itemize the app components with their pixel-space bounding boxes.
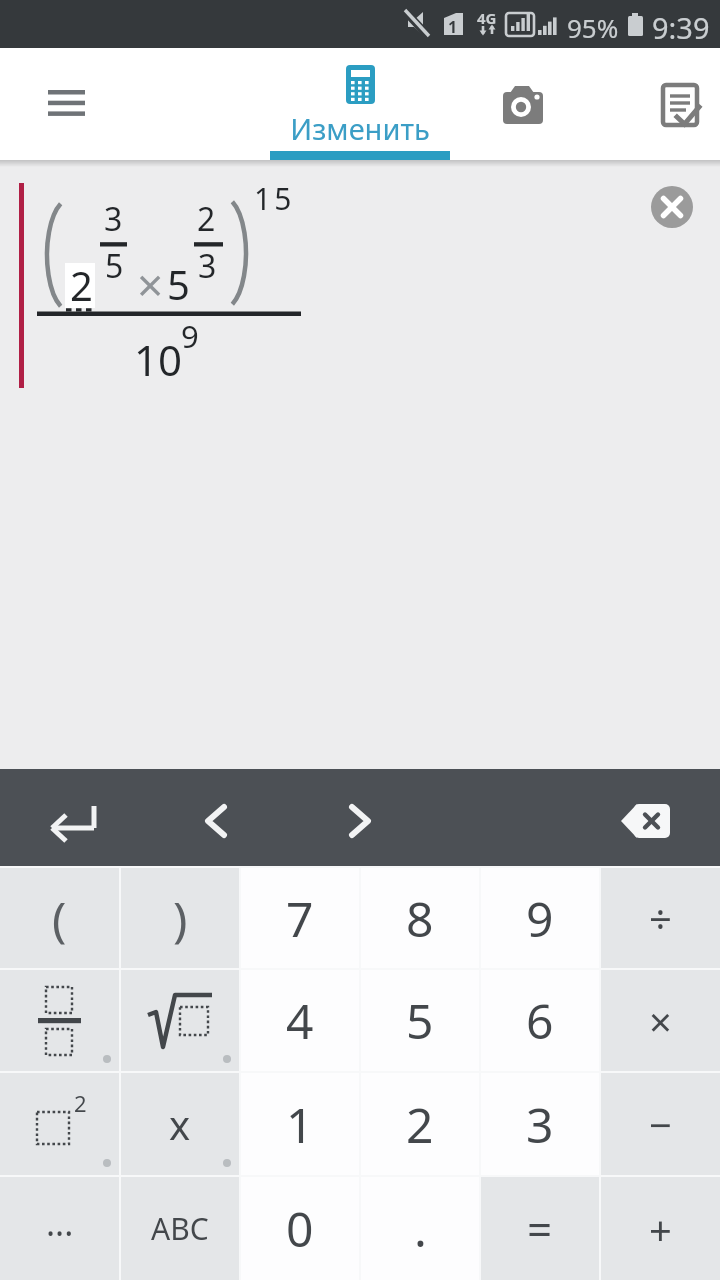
staticText: 6 <box>526 988 554 1053</box>
staticText: x <box>169 1097 191 1151</box>
button[interactable] <box>0 970 119 1071</box>
staticText: × <box>649 994 672 1048</box>
button[interactable]: 0 <box>241 1177 359 1280</box>
button[interactable] <box>651 186 693 228</box>
staticText: 9:39 <box>652 8 710 47</box>
button[interactable]: 6 <box>481 970 599 1071</box>
staticText: 7 <box>286 886 314 951</box>
button[interactable]: = <box>481 1177 599 1280</box>
button[interactable] <box>121 970 239 1071</box>
button[interactable] <box>653 72 713 132</box>
staticText: 5 <box>105 244 124 288</box>
button[interactable]: + <box>601 1177 720 1280</box>
staticText: = <box>527 1199 553 1259</box>
button[interactable] <box>493 76 553 136</box>
button[interactable]: 5 <box>361 970 479 1071</box>
staticText: + <box>649 1202 672 1256</box>
button[interactable] <box>324 793 396 849</box>
staticText: × <box>137 253 164 316</box>
staticText: 10 <box>134 331 183 388</box>
staticText: 8 <box>406 886 434 951</box>
button[interactable]: 3 <box>481 1073 599 1175</box>
button[interactable]: ( <box>0 868 119 968</box>
staticText: 95% <box>567 10 619 45</box>
button[interactable]: x <box>121 1073 239 1175</box>
button[interactable]: ) <box>121 868 239 968</box>
button[interactable]: ... <box>0 1177 119 1280</box>
staticText: 1 <box>286 1092 314 1157</box>
button[interactable]: 2 <box>0 1073 119 1175</box>
staticText: 15 <box>254 178 295 219</box>
staticText: 1 <box>448 16 458 38</box>
button[interactable]: 8 <box>361 868 479 968</box>
button[interactable]: 4 <box>241 970 359 1071</box>
staticText: 2 <box>197 197 216 241</box>
staticText: 2 <box>406 1092 434 1157</box>
staticText: ) <box>173 886 188 951</box>
staticText: 2 <box>74 1088 87 1118</box>
staticText: ABC <box>151 1208 209 1249</box>
button[interactable]: . <box>361 1177 479 1280</box>
button[interactable]: 2 <box>361 1073 479 1175</box>
button[interactable] <box>30 72 102 132</box>
staticText: ÷ <box>649 891 672 945</box>
staticText: 5 <box>167 257 190 311</box>
button[interactable]: 9 <box>481 868 599 968</box>
staticText: 2 <box>70 258 93 312</box>
button[interactable] <box>180 793 252 849</box>
button[interactable]: 7 <box>241 868 359 968</box>
button[interactable]: Изменить <box>270 48 450 160</box>
staticText: − <box>649 1097 672 1151</box>
staticText: . <box>414 1196 427 1261</box>
staticText: 3 <box>526 1092 554 1157</box>
staticText: 9 <box>526 886 554 951</box>
button[interactable]: ABC <box>121 1177 239 1280</box>
staticText: 4 <box>286 988 314 1053</box>
button[interactable] <box>36 793 108 849</box>
staticText: ( <box>52 886 67 951</box>
staticText: ... <box>46 1200 74 1246</box>
staticText: 0 <box>286 1196 314 1261</box>
button[interactable]: ÷ <box>601 868 720 968</box>
button[interactable]: − <box>601 1073 720 1175</box>
button[interactable]: × <box>601 970 720 1071</box>
staticText: 5 <box>406 988 434 1053</box>
staticText: 3 <box>104 197 123 241</box>
staticText: 4G <box>477 8 497 28</box>
button[interactable]: 1 <box>241 1073 359 1175</box>
button[interactable] <box>612 793 684 849</box>
staticText: Изменить <box>270 109 450 148</box>
staticText: 3 <box>198 244 217 288</box>
staticText: 9 <box>181 315 199 357</box>
